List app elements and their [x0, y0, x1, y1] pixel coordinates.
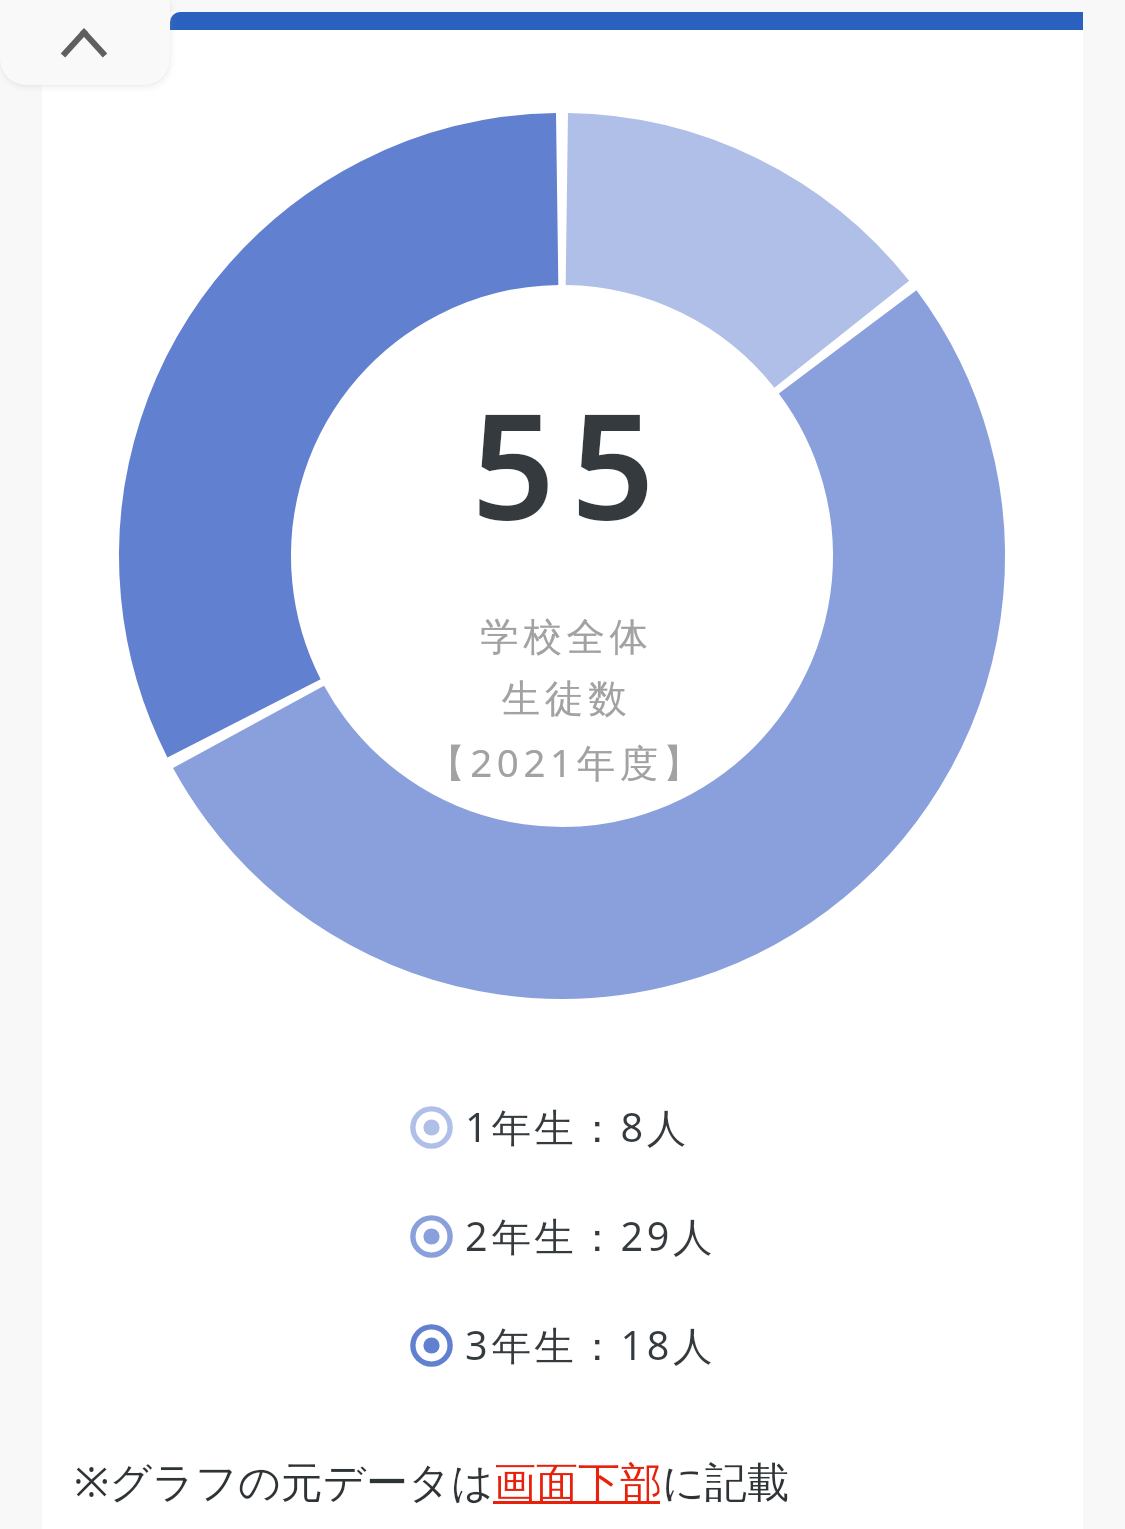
staticText: 3年生：18人: [465, 1318, 716, 1372]
staticText: 2年生：29人: [465, 1209, 716, 1263]
button[interactable]: 2年生：29人: [410, 1209, 716, 1263]
button[interactable]: 3年生：18人: [410, 1318, 716, 1372]
staticText: 1年生：8人: [465, 1100, 690, 1154]
staticText: 55: [471, 364, 671, 563]
button[interactable]: 1年生：8人: [410, 1100, 690, 1154]
staticText: ※グラフの元データは画面下部に記載: [74, 1452, 790, 1509]
button[interactable]: 画面下部: [492, 1458, 661, 1504]
button[interactable]: Collapse chart: [0, 0, 170, 85]
staticText: 学校全体 生徒数 【2021年度】: [427, 613, 706, 788]
